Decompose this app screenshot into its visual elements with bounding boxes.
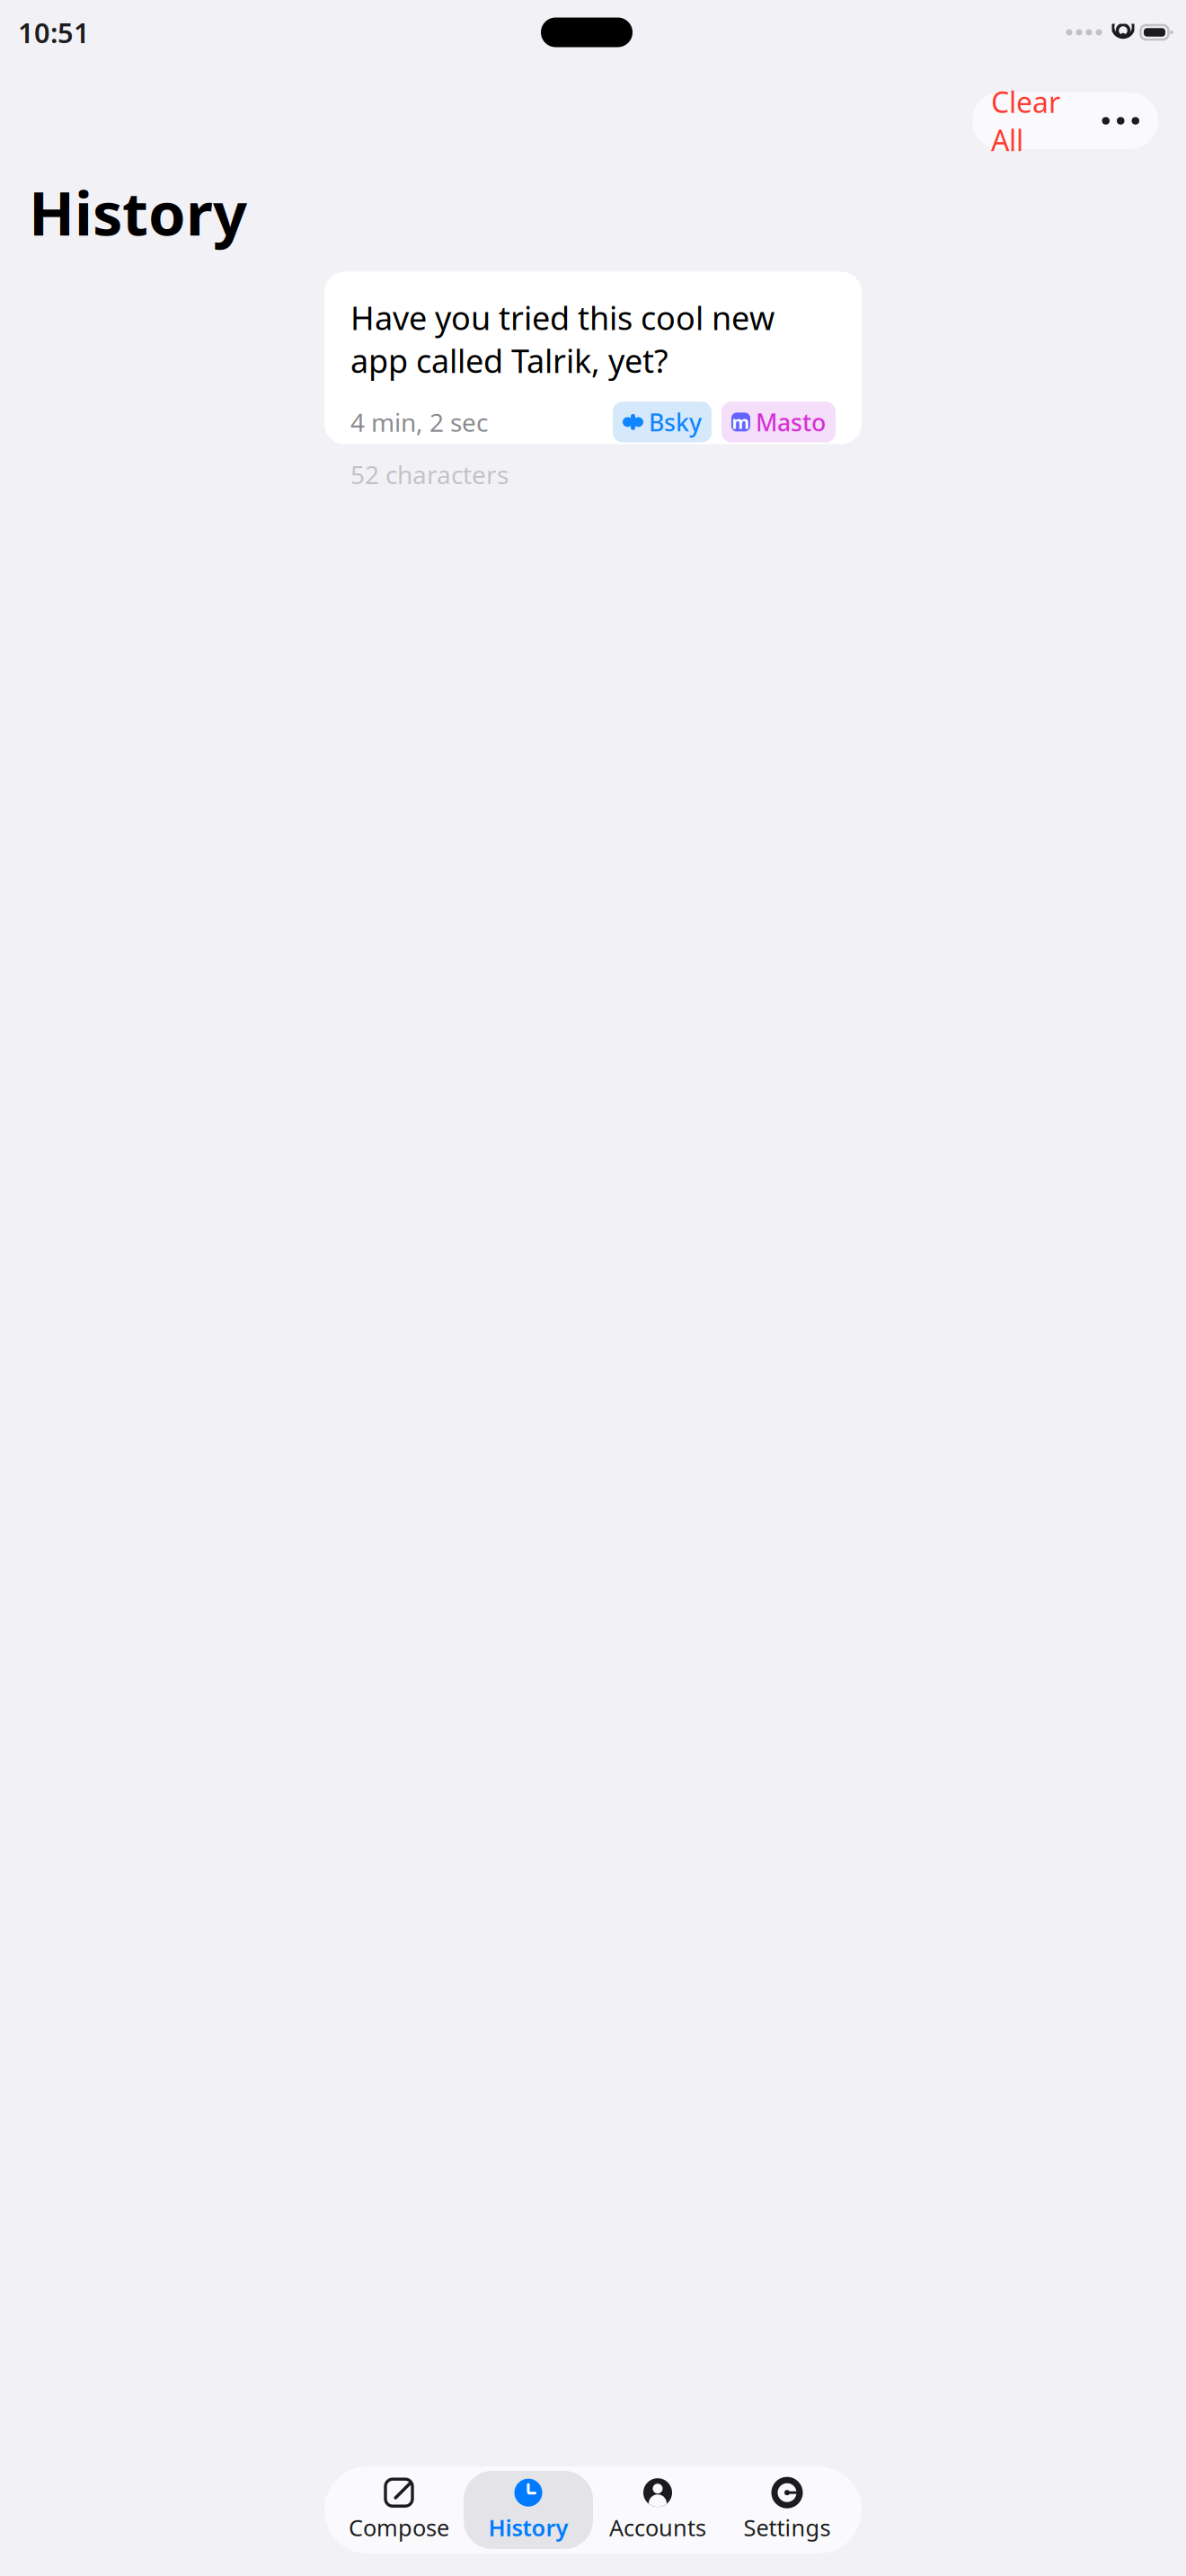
button[interactable]: History [464, 2471, 593, 2549]
staticText: Compose [349, 2512, 449, 2543]
staticText: Masto [756, 406, 826, 438]
button[interactable]: Accounts [593, 2471, 722, 2549]
button[interactable]: Have you tried this cool new app called … [324, 272, 862, 444]
staticText: Have you tried this cool new app called … [350, 296, 774, 382]
staticText: 10:51 [18, 14, 90, 51]
button[interactable]: Clear All [972, 93, 1158, 149]
staticText: Bsky [649, 406, 702, 438]
button[interactable]: Compose [334, 2471, 464, 2549]
staticText: History [488, 2512, 568, 2543]
staticText: Settings [743, 2512, 831, 2543]
staticText: 52 characters [350, 458, 509, 491]
staticText: m [732, 410, 750, 434]
staticText: History [29, 172, 247, 252]
staticText: Clear All [991, 83, 1060, 159]
button[interactable]: Settings [722, 2471, 852, 2549]
staticText: 4 min, 2 sec [350, 405, 488, 439]
staticText: Accounts [609, 2512, 706, 2543]
